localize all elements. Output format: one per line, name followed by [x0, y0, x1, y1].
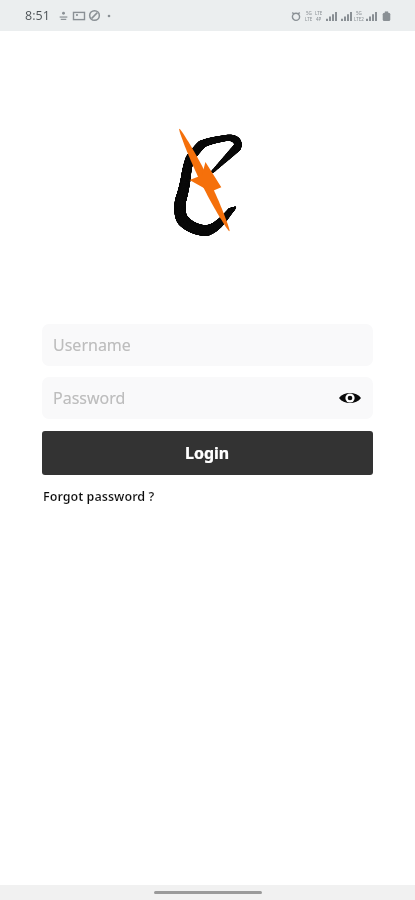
staticText: 5G [356, 10, 362, 16]
staticText: 4P [316, 16, 322, 22]
staticText: Forgot password ? [43, 488, 155, 505]
button[interactable]: Forgot password ? [43, 488, 155, 505]
staticText: 8:51 [25, 7, 50, 24]
button[interactable]: Password [42, 377, 373, 419]
staticText: LTE [305, 16, 313, 22]
staticText: Login [185, 442, 230, 464]
button[interactable]: Login [42, 431, 373, 475]
staticText: 5G [306, 10, 312, 16]
staticText: LTE [315, 10, 323, 16]
button[interactable]: Show password [336, 384, 364, 412]
staticText: Password [53, 387, 126, 409]
staticText: Username [53, 334, 131, 356]
staticText: LTE2 [354, 16, 364, 22]
button[interactable]: Username [42, 324, 373, 366]
